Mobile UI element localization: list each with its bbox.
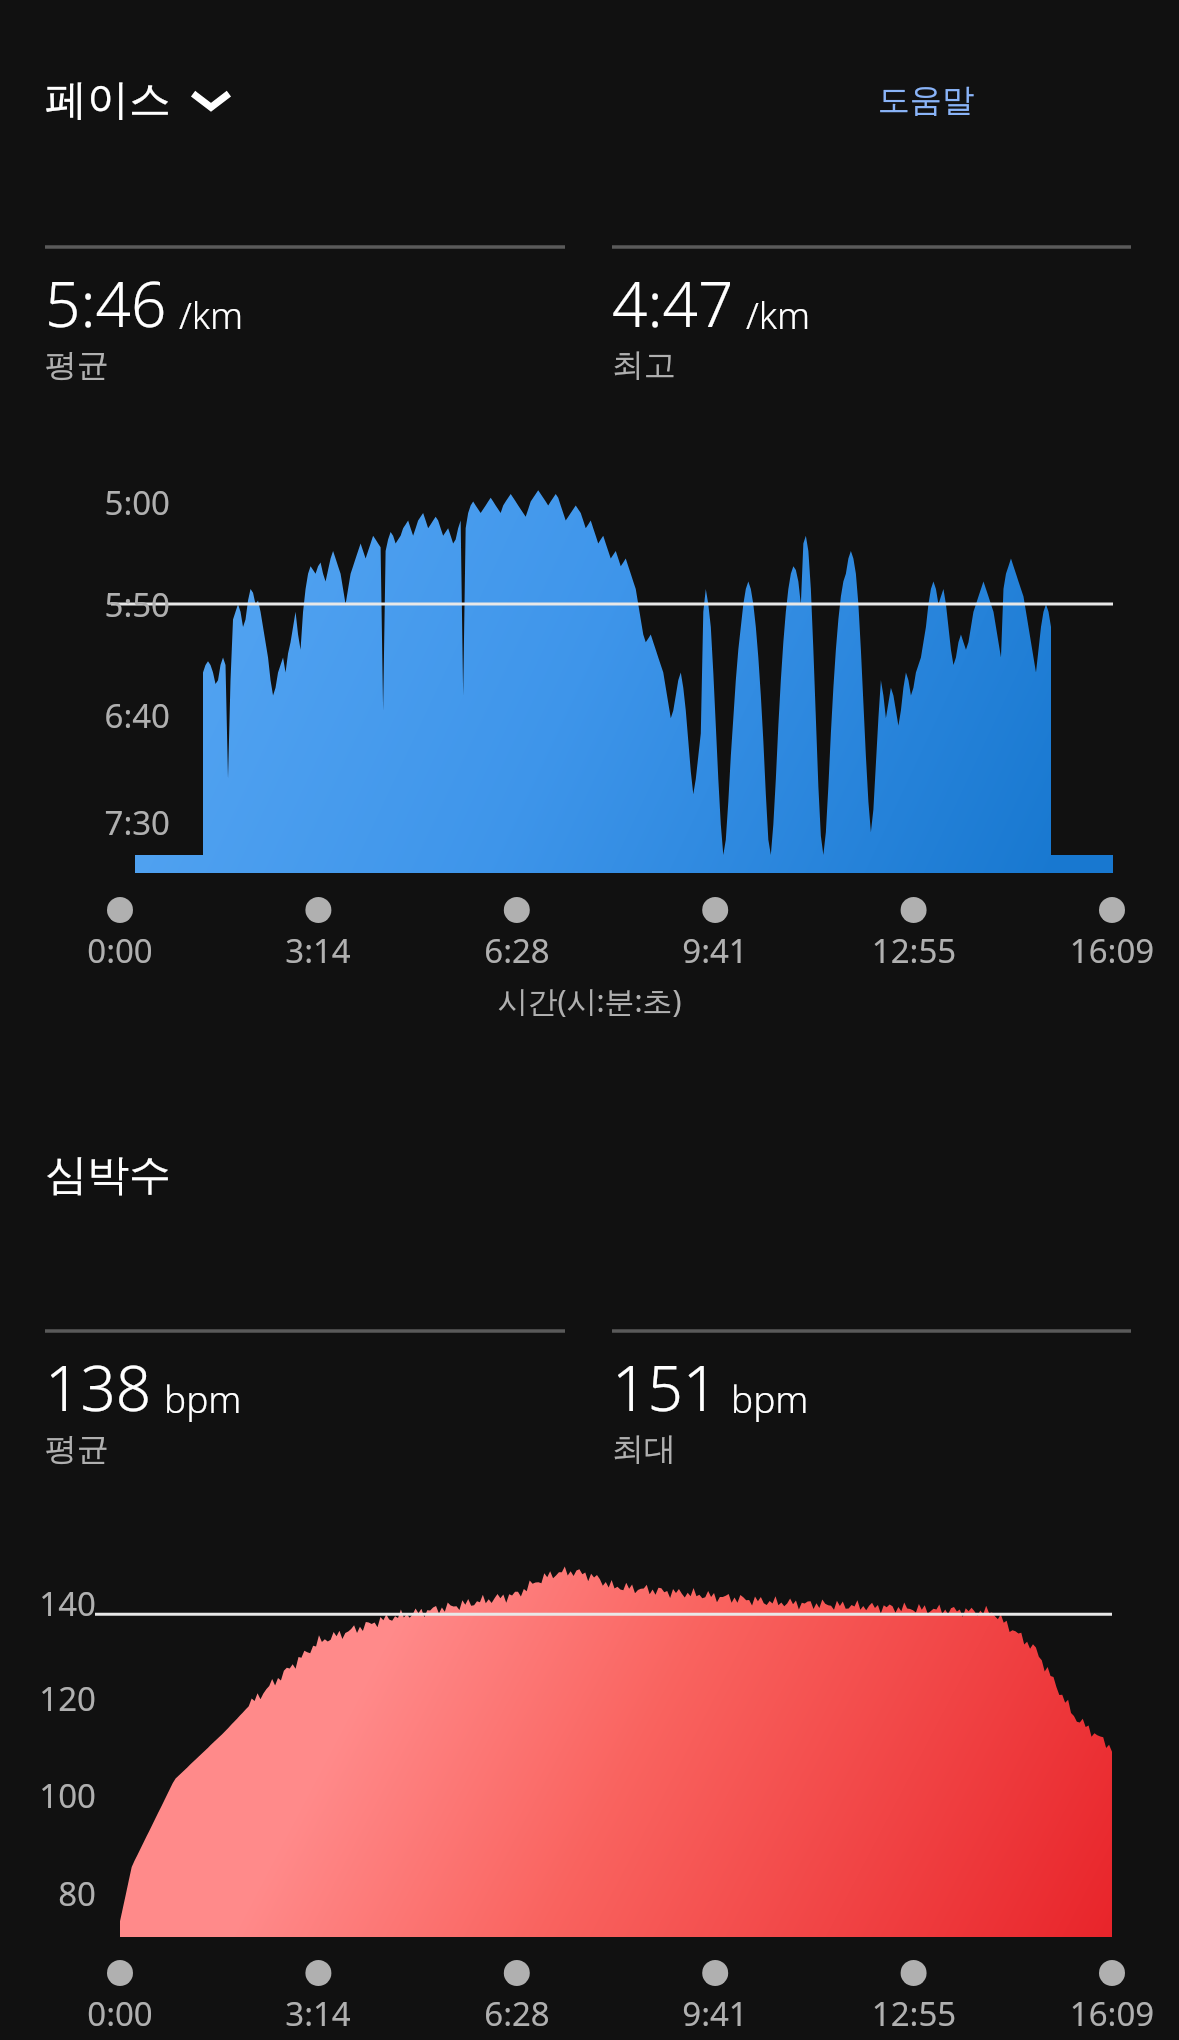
- staticText: 3:14: [228, 928, 408, 973]
- button[interactable]: 151: [612, 1327, 1132, 1497]
- staticText: 시간(시:분:초): [0, 980, 1179, 1021]
- staticText: 최대: [612, 1429, 676, 1469]
- staticText: 7:30: [0, 800, 170, 845]
- staticText: 16:09: [1022, 928, 1179, 973]
- staticText: 평균: [45, 1429, 109, 1469]
- staticText: bpm: [731, 1373, 809, 1423]
- staticText: 16:09: [1022, 1991, 1179, 2036]
- staticText: 최고: [612, 345, 676, 385]
- staticText: 6:40: [0, 693, 170, 738]
- staticText: 80: [0, 1871, 96, 1916]
- button[interactable]: 138: [45, 1327, 565, 1497]
- staticText: 심박수: [45, 1149, 171, 1202]
- staticText: 3:14: [228, 1991, 408, 2036]
- staticText: 12:55: [824, 928, 1004, 973]
- staticText: 138: [45, 1345, 152, 1429]
- button[interactable]: 페이스: [33, 66, 241, 135]
- staticText: 9:41: [625, 928, 805, 973]
- button[interactable]: 도움말: [862, 70, 990, 130]
- staticText: 도움말: [878, 80, 974, 120]
- staticText: 100: [0, 1773, 96, 1818]
- staticText: 5:50: [0, 582, 170, 627]
- button[interactable]: 4:47: [612, 243, 1132, 413]
- staticText: 0:00: [30, 1991, 210, 2036]
- staticText: /km: [179, 289, 244, 339]
- staticText: 5:46: [45, 261, 167, 345]
- staticText: 페이스: [45, 74, 171, 127]
- staticText: 평균: [45, 345, 109, 385]
- staticText: 151: [612, 1345, 719, 1429]
- staticText: 140: [0, 1581, 96, 1626]
- button[interactable]: 5:46: [45, 243, 565, 413]
- staticText: 6:28: [427, 1991, 607, 2036]
- staticText: 6:28: [427, 928, 607, 973]
- staticText: 12:55: [824, 1991, 1004, 2036]
- staticText: bpm: [164, 1373, 242, 1423]
- other: Change metric: [193, 89, 229, 113]
- staticText: 120: [0, 1676, 96, 1721]
- staticText: 0:00: [30, 928, 210, 973]
- staticText: 5:00: [0, 480, 170, 525]
- staticText: 9:41: [625, 1991, 805, 2036]
- staticText: 4:47: [612, 261, 734, 345]
- staticText: /km: [746, 289, 811, 339]
